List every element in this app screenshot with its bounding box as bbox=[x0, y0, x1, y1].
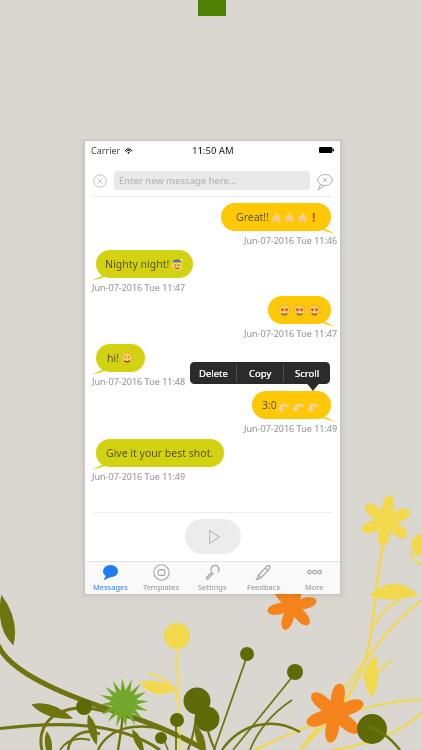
staticText: Enter new message here... bbox=[119, 174, 237, 187]
staticText: Jun-07-2016 Tue 11:46 bbox=[244, 234, 338, 246]
button[interactable]: Feedback bbox=[238, 562, 289, 594]
button[interactable] bbox=[264, 296, 335, 327]
button[interactable]: Clear all messages bbox=[317, 173, 333, 189]
staticText: Jun-07-2016 Tue 11:49 bbox=[244, 422, 338, 434]
staticText: Jun-07-2016 Tue 11:47 bbox=[244, 327, 338, 339]
button[interactable]: Copy bbox=[237, 362, 283, 384]
button[interactable]: Great!! bbox=[217, 203, 335, 234]
button[interactable]: hi! bbox=[92, 344, 149, 375]
staticText: Carrier bbox=[91, 144, 121, 156]
staticText: Delete bbox=[199, 367, 228, 380]
staticText: Settings bbox=[198, 582, 227, 592]
staticText: Copy bbox=[249, 367, 272, 380]
staticText: Jun-07-2016 Tue 11:49 bbox=[92, 470, 186, 482]
staticText: Great!! bbox=[236, 210, 270, 224]
button[interactable]: Send bbox=[185, 519, 241, 554]
button[interactable]: Give it your best shot. bbox=[92, 439, 228, 470]
button[interactable]: Clear text bbox=[93, 174, 107, 188]
button[interactable]: Settings bbox=[187, 562, 238, 594]
button[interactable]: Nighty night! bbox=[92, 250, 197, 281]
staticText: ! bbox=[312, 209, 316, 225]
button[interactable]: Messages bbox=[85, 562, 136, 594]
staticText: Scroll bbox=[295, 367, 320, 380]
staticText: Feedback bbox=[247, 582, 281, 592]
staticText: More bbox=[305, 582, 324, 592]
staticText: Templates bbox=[143, 582, 180, 592]
button[interactable]: 3:0 bbox=[248, 391, 335, 422]
staticText: Jun-07-2016 Tue 11:47 bbox=[92, 281, 186, 293]
button[interactable]: More bbox=[289, 562, 340, 594]
staticText: Messages bbox=[93, 582, 128, 592]
button[interactable]: Delete bbox=[190, 362, 236, 384]
staticText: hi! bbox=[107, 351, 120, 365]
staticText: 11:50 AM bbox=[192, 144, 234, 157]
button[interactable]: Templates bbox=[136, 562, 187, 594]
staticText: Nighty night! bbox=[105, 257, 170, 271]
button[interactable]: Scroll bbox=[284, 362, 330, 384]
staticText: Jun-07-2016 Tue 11:48 bbox=[92, 375, 186, 387]
button[interactable]: Enter new message here... bbox=[114, 171, 310, 190]
staticText: Give it your best shot. bbox=[106, 446, 214, 460]
staticText: 3:0 bbox=[262, 398, 277, 412]
